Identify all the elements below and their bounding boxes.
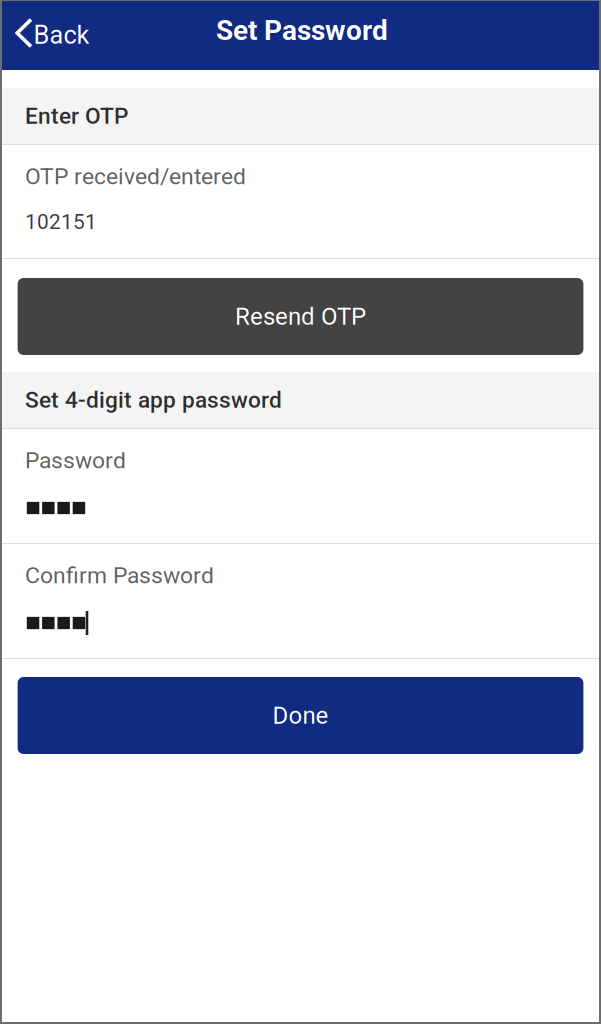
staticText: Password xyxy=(25,447,126,474)
button[interactable]: Back xyxy=(0,0,101,70)
staticText: Resend OTP xyxy=(235,302,366,330)
staticText: OTP received/entered xyxy=(25,163,246,190)
button[interactable]: OTP received/entered xyxy=(0,145,601,258)
staticText: 102151 xyxy=(25,210,97,234)
staticText: Set Password xyxy=(216,14,388,47)
staticText: Confirm Password xyxy=(25,562,214,589)
staticText: Done xyxy=(272,701,328,729)
button[interactable]: Done xyxy=(18,677,583,754)
button[interactable]: Resend OTP xyxy=(18,278,583,355)
staticText: Back xyxy=(33,20,89,50)
staticText: Set 4-digit app password xyxy=(25,387,282,413)
staticText: Enter OTP xyxy=(25,103,128,129)
button[interactable]: Confirm Password xyxy=(0,544,601,658)
button[interactable]: Password xyxy=(0,429,601,543)
